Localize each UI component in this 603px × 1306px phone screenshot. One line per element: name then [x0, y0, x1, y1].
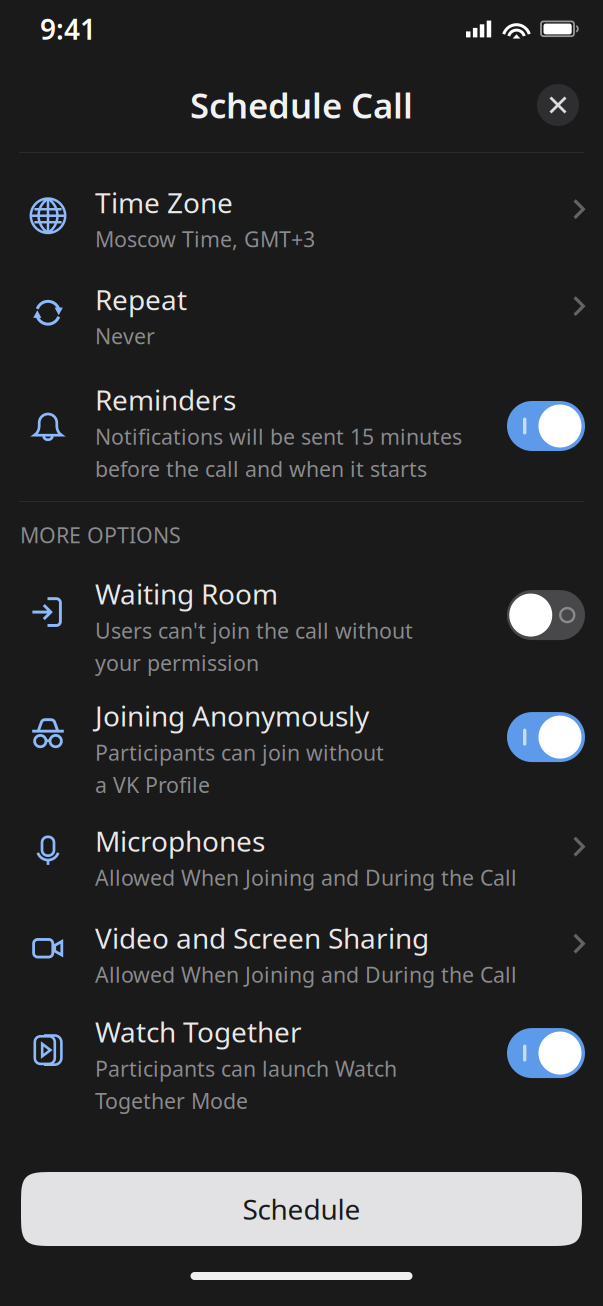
- staticText: before the call and when it starts: [95, 454, 427, 483]
- button[interactable]: Close: [535, 82, 581, 128]
- staticText: Moscow Time, GMT+3: [95, 225, 315, 253]
- staticText: Notifications will be sent 15 minutes: [95, 422, 462, 450]
- staticText: Never: [95, 322, 155, 350]
- staticText: a VK Profile: [95, 771, 210, 799]
- staticText: Allowed When Joining and During the Call: [95, 863, 517, 892]
- staticText: Allowed When Joining and During the Call: [95, 960, 517, 989]
- staticText: Schedule Call: [190, 82, 413, 128]
- button[interactable]: Reminders: [0, 347, 603, 501]
- staticText: Together Mode: [95, 1087, 248, 1115]
- button[interactable]: Waiting Room: [0, 548, 603, 670]
- button[interactable]: Microphones: [0, 792, 603, 888]
- staticText: Video and Screen Sharing: [95, 919, 429, 956]
- staticText: your permission: [95, 649, 259, 677]
- button[interactable]: Joining Anonymously: [0, 670, 603, 792]
- button[interactable]: Schedule: [21, 1172, 582, 1246]
- staticText: Users can't join the call without: [95, 616, 413, 645]
- staticText: Time Zone: [95, 184, 233, 221]
- staticText: MORE OPTIONS: [20, 521, 181, 549]
- staticText: Schedule: [242, 1190, 360, 1228]
- button[interactable]: Watch Together: [0, 986, 603, 1108]
- staticText: Joining Anonymously: [95, 697, 369, 734]
- staticText: Participants can launch Watch: [95, 1054, 397, 1083]
- button[interactable]: Time Zone: [0, 153, 603, 250]
- staticText: 9:41: [40, 10, 96, 48]
- button[interactable]: Repeat: [0, 250, 603, 347]
- button[interactable]: Video and Screen Sharing: [0, 888, 603, 986]
- staticText: Microphones: [95, 822, 265, 859]
- staticText: Reminders: [95, 381, 236, 418]
- staticText: Repeat: [95, 281, 187, 318]
- staticText: Participants can join without: [95, 738, 384, 767]
- staticText: Waiting Room: [95, 575, 278, 612]
- staticText: Watch Together: [95, 1013, 302, 1050]
